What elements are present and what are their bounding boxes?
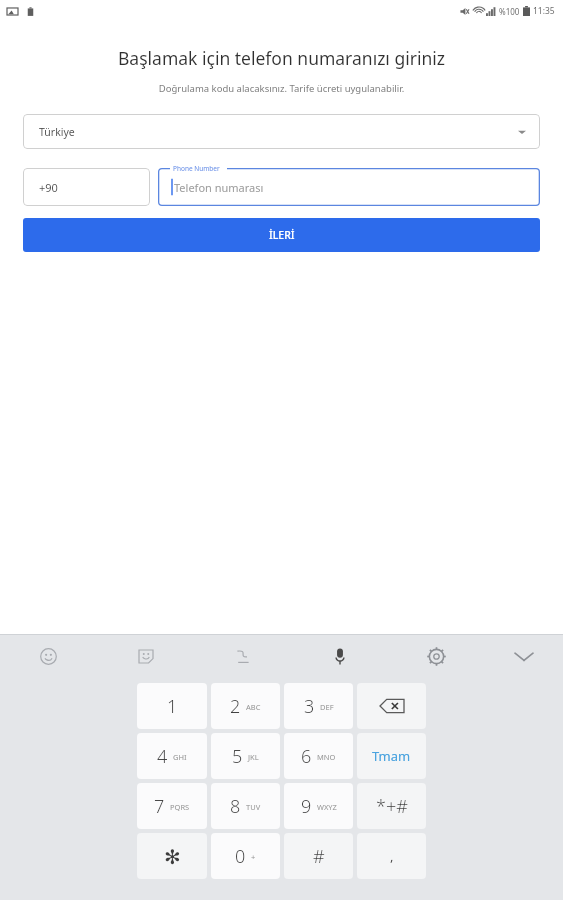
staticText: JKL — [248, 752, 259, 762]
staticText: ✻ — [164, 845, 181, 868]
button[interactable] — [291, 635, 388, 677]
staticText: 1 — [167, 694, 178, 719]
staticText: %100 — [499, 6, 520, 17]
button[interactable]: 8 — [211, 783, 280, 829]
button[interactable]: Star — [137, 833, 207, 879]
button[interactable]: 6 — [284, 733, 353, 779]
staticText: 5 — [232, 744, 243, 769]
staticText: WXYZ — [317, 802, 337, 812]
button[interactable]: 5 — [211, 733, 280, 779]
button[interactable]: Done — [357, 733, 426, 779]
staticText: PQRS — [170, 802, 190, 812]
button[interactable]: Backspace — [357, 683, 426, 729]
staticText: Doğrulama kodu alacaksınız. Tarife ücret… — [0, 82, 563, 95]
button[interactable]: *+# — [357, 783, 426, 829]
staticText: Türkiye — [39, 125, 75, 139]
staticText: , — [390, 847, 394, 865]
staticText: 9 — [301, 794, 312, 819]
button[interactable]: Phone Number — [158, 168, 540, 206]
staticText: +90 — [39, 180, 58, 195]
button[interactable] — [194, 635, 291, 677]
staticText: 7 — [154, 794, 165, 819]
staticText: Phone Number — [173, 164, 220, 173]
button[interactable]: İLERİ — [23, 218, 540, 252]
staticText: MNO — [317, 752, 336, 762]
button[interactable]: +90 — [23, 168, 150, 206]
button[interactable]: 1 — [137, 683, 207, 729]
staticText: DEF — [320, 702, 334, 712]
button[interactable] — [388, 635, 485, 677]
staticText: 8 — [230, 794, 241, 819]
staticText: 0 — [235, 844, 246, 869]
button[interactable]: 2 — [211, 683, 280, 729]
button[interactable]: 0 — [211, 833, 280, 879]
staticText: + — [251, 852, 256, 862]
staticText: # — [313, 844, 325, 869]
staticText: Telefon numarası — [174, 180, 264, 195]
button[interactable] — [0, 635, 97, 677]
staticText: GHI — [173, 752, 187, 762]
staticText: 2 — [230, 694, 241, 719]
button[interactable]: # — [284, 833, 353, 879]
staticText: 4 — [157, 744, 168, 769]
button[interactable]: 9 — [284, 783, 353, 829]
staticText: Başlamak için telefon numaranızı giriniz — [0, 46, 563, 70]
button[interactable]: 7 — [137, 783, 207, 829]
staticText: TUV — [246, 802, 261, 812]
staticText: Tmam — [372, 747, 411, 765]
button[interactable]: Comma — [357, 833, 426, 879]
staticText: 3 — [304, 694, 315, 719]
staticText: İLERİ — [269, 228, 295, 242]
button[interactable] — [485, 635, 563, 677]
button[interactable]: 3 — [284, 683, 353, 729]
staticText: ABC — [246, 702, 261, 712]
staticText: *+# — [376, 794, 408, 819]
staticText: 11:35 — [533, 5, 555, 17]
staticText: 6 — [301, 744, 312, 769]
button[interactable]: 4 — [137, 733, 207, 779]
button[interactable] — [97, 635, 194, 677]
button[interactable]: Türkiye — [23, 114, 540, 149]
